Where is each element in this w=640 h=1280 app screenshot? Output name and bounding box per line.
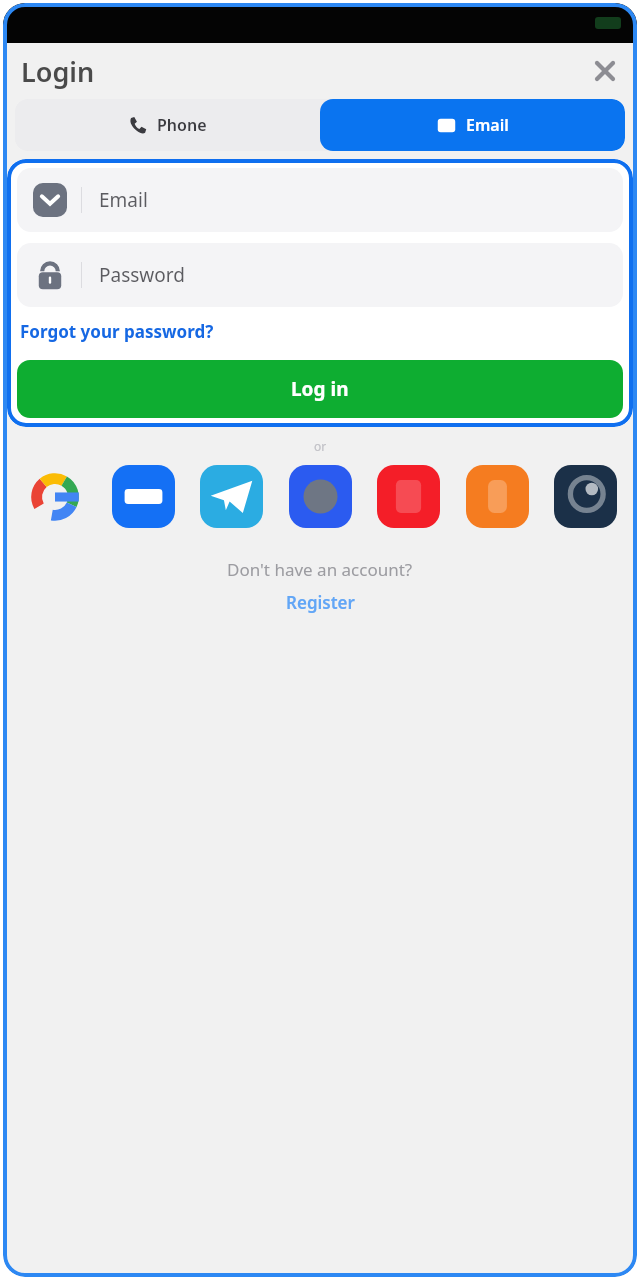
staticText: Password — [99, 262, 185, 288]
button[interactable]: Register — [278, 588, 363, 617]
button[interactable]: Phone — [15, 99, 320, 151]
staticText: Register — [286, 591, 355, 614]
staticText: Login — [21, 53, 95, 90]
button[interactable]: Sign in with Google — [23, 465, 86, 528]
button[interactable]: Sign in with Yandex — [377, 465, 440, 528]
button[interactable]: Log in — [17, 360, 623, 418]
other: Email — [33, 183, 67, 217]
staticText: Forgot your password? — [20, 320, 214, 343]
staticText: Don't have an account? — [227, 558, 413, 581]
staticText: Email — [466, 114, 509, 136]
button[interactable]: Sign in with Telegram — [200, 465, 263, 528]
button[interactable]: Sign in with Steam — [554, 465, 617, 528]
button[interactable]: Sign in with VK — [112, 465, 175, 528]
other: Password — [33, 258, 67, 292]
staticText: Phone — [157, 114, 207, 136]
button[interactable]: Sign in with OK — [466, 465, 529, 528]
staticText: or — [314, 438, 327, 454]
button[interactable]: Login — [15, 49, 101, 94]
button[interactable]: Close — [587, 53, 623, 89]
button[interactable]: Email — [17, 168, 623, 232]
button[interactable]: Email — [320, 99, 625, 151]
button[interactable]: Forgot your password? — [17, 316, 217, 347]
button[interactable]: Password — [17, 243, 623, 307]
staticText: Email — [99, 187, 148, 213]
button[interactable]: Sign in with Mail — [289, 465, 352, 528]
staticText: Log in — [291, 376, 349, 402]
